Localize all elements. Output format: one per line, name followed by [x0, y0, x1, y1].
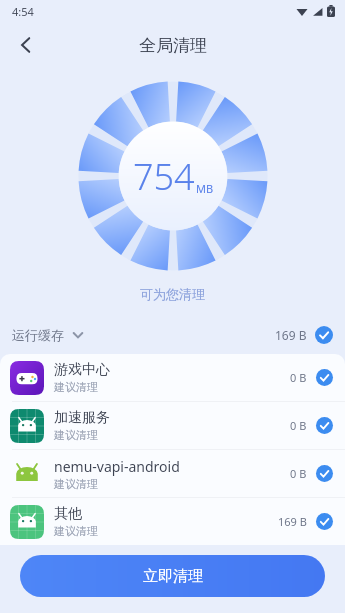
- button[interactable]: Selected: [316, 513, 333, 530]
- button[interactable]: Selected: [316, 465, 333, 482]
- button[interactable]: Selected: [315, 326, 333, 344]
- staticText: nemu-vapi-android: [54, 457, 180, 476]
- staticText: 0 B: [290, 466, 307, 481]
- staticText: 建议清理: [54, 428, 98, 442]
- staticText: 754: [133, 152, 195, 201]
- staticText: 运行缓存: [12, 327, 64, 343]
- button[interactable]: Selected: [316, 417, 333, 434]
- button[interactable]: 加速服务: [0, 402, 345, 449]
- staticText: 169 B: [278, 514, 307, 529]
- staticText: 可为您清理: [140, 286, 205, 302]
- button[interactable]: 游戏中心: [0, 354, 345, 401]
- staticText: 4:54: [12, 4, 34, 19]
- staticText: 立即清理: [143, 567, 203, 586]
- staticText: 0 B: [290, 418, 307, 433]
- button[interactable]: Selected: [316, 369, 333, 386]
- staticText: 其他: [54, 505, 82, 523]
- staticText: 建议清理: [54, 524, 98, 538]
- button[interactable]: 运行缓存: [0, 320, 345, 350]
- staticText: 建议清理: [54, 380, 98, 394]
- button[interactable]: 其他: [0, 498, 345, 545]
- button[interactable]: Back: [6, 25, 46, 65]
- staticText: 0 B: [290, 370, 307, 385]
- staticText: 游戏中心: [54, 361, 110, 379]
- staticText: 建议清理: [54, 477, 98, 491]
- staticText: MB: [196, 181, 214, 196]
- staticText: 全局清理: [139, 35, 207, 56]
- staticText: 加速服务: [54, 409, 110, 427]
- button[interactable]: nemu-vapi-android: [0, 450, 345, 497]
- button[interactable]: 立即清理: [20, 555, 325, 597]
- staticText: 169 B: [275, 327, 307, 343]
